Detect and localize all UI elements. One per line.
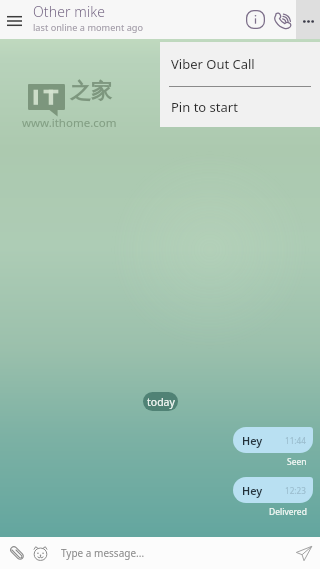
staticText: Type a message... — [61, 546, 145, 560]
staticText: 之家 — [70, 78, 112, 104]
button[interactable]: Viber Out Call — [160, 42, 320, 86]
button[interactable]: Info — [240, 0, 270, 39]
staticText: Hey — [242, 483, 263, 498]
button[interactable]: Menu — [0, 0, 29, 39]
staticText: Viber Out Call — [171, 55, 255, 73]
staticText: 12:23 — [285, 485, 306, 496]
button[interactable]: Call — [268, 0, 298, 39]
button[interactable]: More options — [296, 0, 320, 39]
button[interactable]: Hey — [233, 477, 313, 503]
button[interactable]: Attach file — [4, 537, 30, 569]
button[interactable]: Send — [292, 537, 316, 569]
staticText: Seen — [287, 456, 307, 468]
staticText: today — [147, 395, 175, 409]
staticText: Hey — [242, 433, 263, 448]
staticText: www.ithome.com — [22, 115, 117, 131]
staticText: Other mike — [33, 2, 106, 21]
button[interactable]: Pin to start — [160, 87, 320, 127]
button[interactable]: Stickers — [27, 537, 53, 569]
staticText: Delivered — [269, 506, 307, 518]
button[interactable]: Hey — [233, 427, 313, 453]
staticText: last online a moment ago — [33, 21, 144, 34]
staticText: Pin to start — [171, 98, 238, 116]
button[interactable]: today — [143, 392, 178, 411]
staticText: 11:44 — [285, 435, 306, 446]
